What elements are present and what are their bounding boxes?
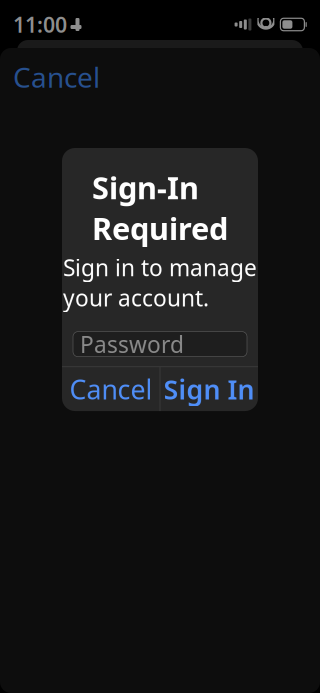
button[interactable]: Cancel xyxy=(0,50,113,104)
staticText: Sign in to manage your account. xyxy=(63,252,257,313)
button[interactable]: Cancel xyxy=(62,367,160,411)
staticText: 11:00 xyxy=(13,10,67,39)
button[interactable]: Sign In xyxy=(160,367,258,411)
staticText: Cancel xyxy=(69,371,152,407)
staticText: Sign In xyxy=(164,371,255,407)
staticText: Password xyxy=(80,329,184,359)
staticText: Sign-In Required xyxy=(92,167,228,248)
staticText: Cancel xyxy=(13,58,100,96)
